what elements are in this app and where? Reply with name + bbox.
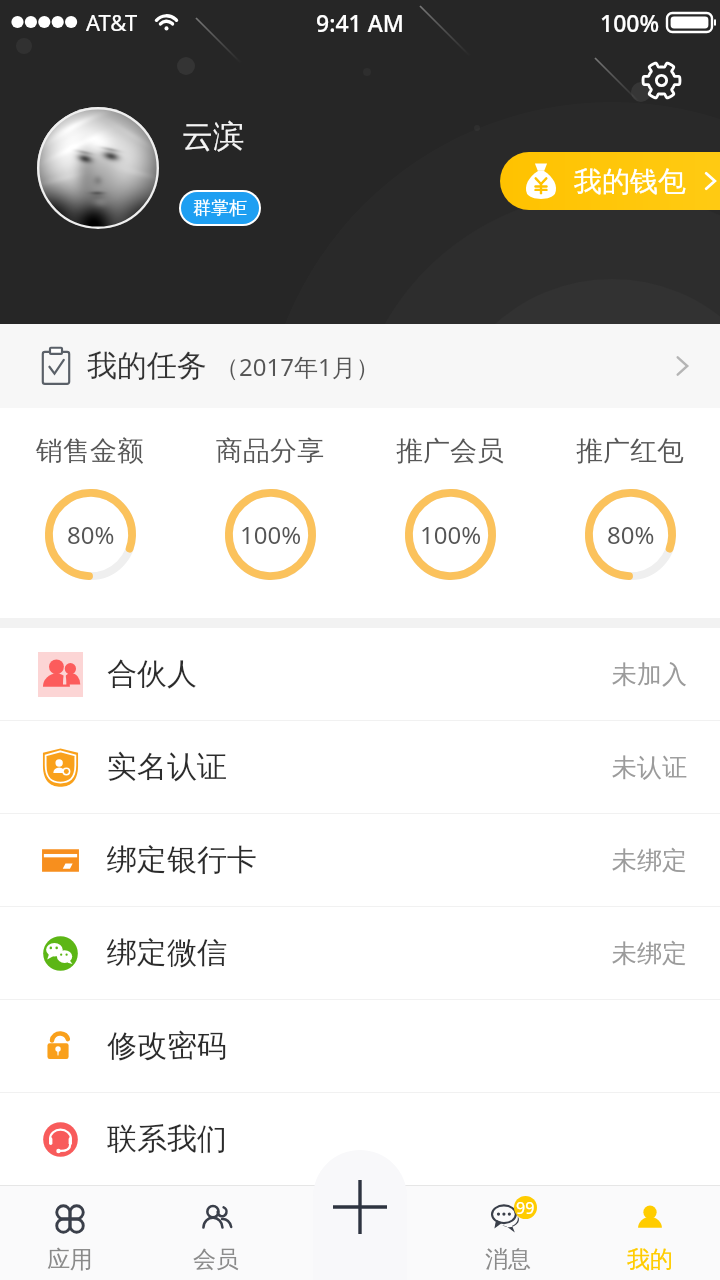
staticText: 消息	[485, 1245, 531, 1274]
button[interactable]: 群掌柜	[181, 192, 259, 224]
staticText: 99	[516, 1197, 535, 1219]
button[interactable]: 我的任务	[0, 324, 720, 408]
staticText: 云滨	[182, 117, 244, 156]
staticText: 群掌柜	[193, 197, 247, 220]
button[interactable]: 修改密码	[0, 1000, 720, 1092]
button[interactable]: 合伙人	[0, 628, 720, 720]
staticText: AT&T	[86, 7, 138, 37]
button[interactable]: 我的	[590, 1189, 710, 1280]
staticText: （2017年1月）	[215, 350, 380, 383]
staticText: 应用	[47, 1245, 93, 1274]
staticText: 合伙人	[107, 655, 197, 693]
button[interactable]: 联系我们	[0, 1093, 720, 1185]
staticText: 商品分享	[216, 434, 324, 468]
button[interactable]: 应用	[10, 1189, 130, 1280]
staticText: 我的任务	[87, 347, 207, 385]
staticText: 我的钱包	[574, 164, 686, 199]
button[interactable]: 99	[448, 1189, 568, 1280]
button[interactable]: 绑定银行卡	[0, 814, 720, 906]
staticText: 未加入	[612, 659, 687, 690]
staticText: 80%	[607, 518, 655, 551]
staticText: 未绑定	[612, 845, 687, 876]
staticText: 会员	[193, 1245, 239, 1274]
staticText: 我的	[627, 1245, 673, 1274]
staticText: 销售金额	[36, 434, 144, 468]
staticText: 绑定银行卡	[107, 841, 257, 879]
staticText: 绑定微信	[107, 934, 227, 972]
staticText: 实名认证	[107, 748, 227, 786]
staticText: 100%	[420, 518, 482, 551]
staticText: 未认证	[612, 752, 687, 783]
staticText: 100%	[240, 518, 302, 551]
staticText: 推广红包	[576, 434, 684, 468]
button[interactable]: 会员	[156, 1189, 276, 1280]
staticText: 9:41 AM	[316, 7, 404, 38]
staticText: 未绑定	[612, 938, 687, 969]
button[interactable]: Settings	[632, 51, 690, 109]
button[interactable]: Profile photo	[37, 107, 159, 229]
button[interactable]: 实名认证	[0, 721, 720, 813]
staticText: 修改密码	[107, 1027, 227, 1065]
button[interactable]: Add	[313, 1150, 407, 1280]
staticText: 80%	[67, 518, 115, 551]
button[interactable]: 绑定微信	[0, 907, 720, 999]
button[interactable]: 我的钱包	[500, 152, 720, 210]
staticText: 推广会员	[396, 434, 504, 468]
staticText: 100%	[600, 7, 660, 38]
staticText: 联系我们	[107, 1120, 227, 1158]
